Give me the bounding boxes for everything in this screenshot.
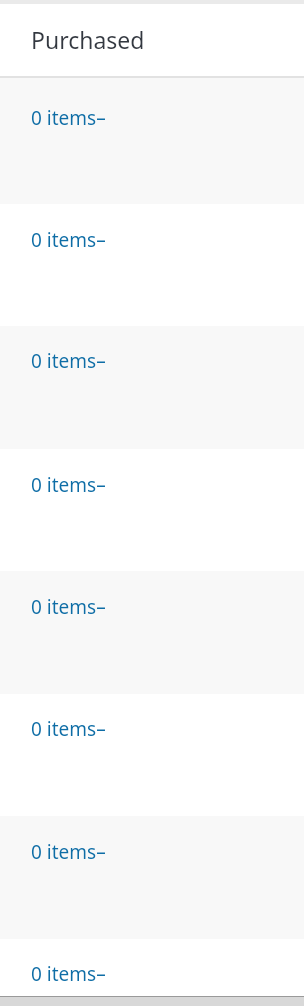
staticText: 0 items– — [31, 839, 106, 865]
button[interactable]: 0 items– — [0, 939, 304, 996]
button[interactable]: 0 items– — [0, 204, 304, 326]
button[interactable]: 0 items– — [0, 326, 304, 449]
staticText: Purchased — [31, 24, 145, 55]
staticText: 0 items– — [31, 105, 106, 131]
button[interactable]: 0 items– — [0, 571, 304, 694]
staticText: 0 items– — [31, 961, 106, 987]
staticText: 0 items– — [31, 348, 106, 374]
staticText: 0 items– — [31, 227, 106, 253]
button[interactable]: 0 items– — [0, 78, 304, 204]
button[interactable]: 0 items– — [0, 449, 304, 571]
button[interactable]: 0 items– — [0, 816, 304, 939]
button[interactable]: 0 items– — [0, 694, 304, 816]
staticText: 0 items– — [31, 716, 106, 742]
staticText: 0 items– — [31, 594, 106, 620]
staticText: 0 items– — [31, 472, 106, 498]
